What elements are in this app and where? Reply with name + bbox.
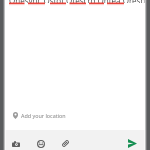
button[interactable]: Insert emoji <box>37 140 45 148</box>
staticText: Onesync Osfot Otescro Ontea Oresonc <box>9 0 150 3</box>
button[interactable]: Take photo <box>12 141 20 147</box>
button[interactable]: Send <box>128 139 137 148</box>
button[interactable]: Add your location <box>0 105 150 125</box>
button[interactable]: Attach file <box>62 140 69 147</box>
staticText: Add your location <box>21 112 66 119</box>
